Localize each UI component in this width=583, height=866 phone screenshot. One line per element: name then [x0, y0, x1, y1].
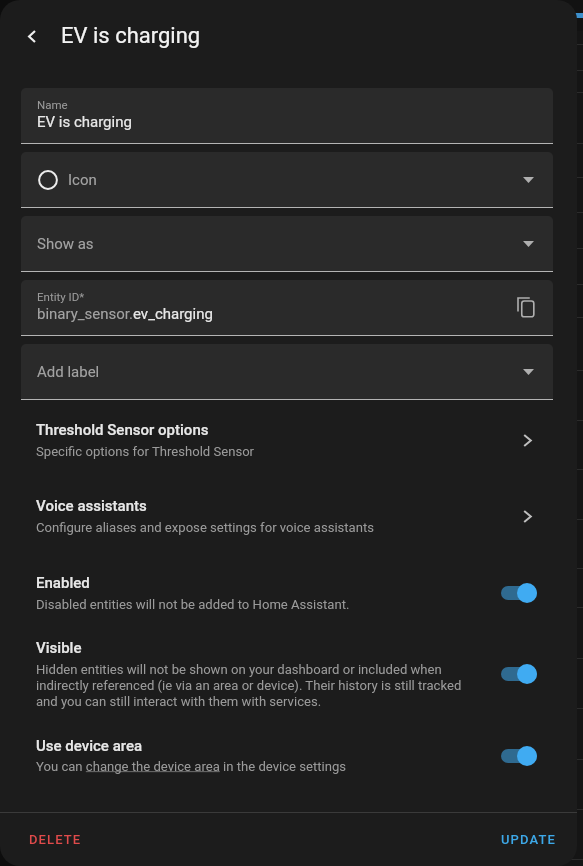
button[interactable]: Enabled — [0, 574, 577, 612]
staticText: Disabled entities will not be added to H… — [36, 597, 350, 612]
button[interactable]: Use device area — [0, 737, 577, 774]
button[interactable]: Add label — [21, 344, 553, 399]
button[interactable]: Toggle on — [501, 744, 537, 768]
staticText: DELETE — [29, 832, 82, 847]
staticText: Configure aliases and expose settings fo… — [36, 520, 375, 535]
button[interactable]: Toggle on — [501, 581, 537, 605]
button[interactable]: Copy entity id — [514, 296, 536, 318]
staticText: Voice assistants — [36, 497, 147, 515]
staticText: Hidden entities will not be shown on you… — [36, 662, 479, 709]
staticText: Enabled — [36, 574, 90, 592]
button[interactable]: Threshold Sensor options — [0, 421, 577, 459]
staticText: EV is charging — [37, 113, 132, 131]
staticText: Icon — [68, 171, 97, 189]
staticText: Entity ID* — [37, 290, 85, 303]
staticText: Name — [37, 98, 68, 111]
staticText: Specific options for Threshold Sensor — [36, 444, 255, 459]
staticText: Add label — [37, 363, 100, 381]
staticText: You can change the device area in the de… — [36, 759, 347, 774]
staticText: Show as — [37, 235, 94, 253]
staticText: Threshold Sensor options — [36, 421, 209, 439]
button[interactable]: Name — [21, 88, 553, 143]
button[interactable]: UPDATE — [485, 823, 572, 856]
button[interactable]: Entity ID* — [21, 280, 553, 335]
button[interactable]: Icon — [21, 152, 553, 207]
button[interactable]: Voice assistants — [0, 497, 577, 535]
staticText: Visible — [36, 639, 82, 657]
button[interactable]: Visible — [0, 639, 577, 709]
staticText: EV is charging — [61, 23, 201, 49]
button[interactable]: DELETE — [13, 823, 98, 856]
staticText: UPDATE — [501, 832, 556, 847]
button[interactable]: Show as — [21, 216, 553, 271]
button[interactable]: Back — [14, 18, 50, 54]
staticText: Use device area — [36, 737, 143, 755]
staticText: binary_sensor.ev_charging — [37, 305, 213, 323]
button[interactable]: Toggle on — [501, 662, 537, 686]
